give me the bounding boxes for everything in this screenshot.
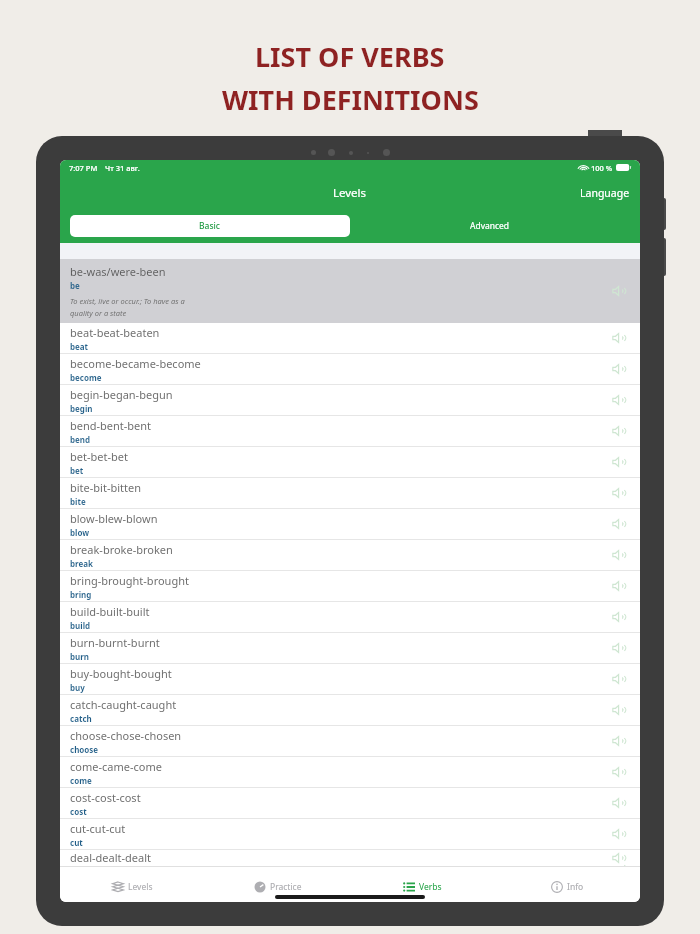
staticText: be-was/were-been [70, 264, 166, 279]
staticText: choose-chose-chosen [70, 728, 182, 743]
staticText: Practice [270, 881, 302, 893]
staticText: Чт 31 авг. [105, 163, 140, 173]
button[interactable]: Play pronunciation [612, 673, 626, 685]
staticText: Verbs [419, 881, 442, 893]
button[interactable]: deal-dealt-dealt [60, 850, 640, 866]
staticText: Advanced [470, 220, 510, 232]
button[interactable]: Play pronunciation [612, 611, 626, 623]
staticText: come [70, 775, 92, 786]
button[interactable]: cost-cost-cost [60, 788, 640, 819]
button[interactable]: Play pronunciation [612, 580, 626, 592]
button[interactable]: be-was/were-been [60, 259, 640, 323]
staticText: burn [70, 651, 90, 662]
staticText: bring [70, 589, 92, 600]
staticText: bet-bet-bet [70, 449, 128, 464]
staticText: choose [70, 744, 99, 755]
button[interactable]: build-built-built [60, 602, 640, 633]
staticText: break-broke-broken [70, 542, 173, 557]
button[interactable]: bend-bent-bent [60, 416, 640, 447]
button[interactable]: Play pronunciation [612, 642, 626, 654]
button[interactable]: Play pronunciation [612, 363, 626, 375]
staticText: cost-cost-cost [70, 790, 141, 805]
button[interactable]: begin-began-begun [60, 385, 640, 416]
staticText: become [70, 372, 102, 383]
button[interactable]: Play pronunciation [612, 332, 626, 344]
staticText: build [70, 620, 91, 631]
staticText: catch-caught-caught [70, 697, 177, 712]
staticText: Levels [333, 185, 367, 201]
button[interactable]: Advanced [350, 215, 630, 237]
staticText: quality or a state [70, 308, 127, 318]
button[interactable]: burn-burnt-burnt [60, 633, 640, 664]
staticText: become-became-become [70, 356, 201, 371]
staticText: catch [70, 713, 92, 724]
staticText: bend-bent-bent [70, 418, 152, 433]
staticText: be [70, 280, 80, 291]
staticText: Basic [199, 220, 221, 232]
staticText: beat-beat-beaten [70, 325, 160, 340]
button[interactable]: Verbs [350, 871, 495, 902]
staticText: bet [70, 465, 84, 476]
button[interactable]: cut-cut-cut [60, 819, 640, 850]
staticText: beat [70, 341, 89, 352]
button[interactable]: beat-beat-beaten [60, 323, 640, 354]
button[interactable]: Play pronunciation [612, 828, 626, 840]
button[interactable]: buy-bought-bought [60, 664, 640, 695]
staticText: bite [70, 496, 86, 507]
button[interactable]: catch-caught-caught [60, 695, 640, 726]
button[interactable]: Play pronunciation [612, 797, 626, 809]
staticText: blow [70, 527, 90, 538]
staticText: break [70, 558, 93, 569]
staticText: burn-burnt-burnt [70, 635, 160, 650]
button[interactable]: Play pronunciation [612, 735, 626, 747]
button[interactable]: Play pronunciation [612, 549, 626, 561]
button[interactable]: bring-brought-brought [60, 571, 640, 602]
button[interactable]: bite-bit-bitten [60, 478, 640, 509]
button[interactable]: Practice [205, 871, 350, 902]
button[interactable]: Play pronunciation [612, 518, 626, 530]
button[interactable]: Play pronunciation [612, 425, 626, 437]
staticText: bite-bit-bitten [70, 480, 141, 495]
staticText: bring-brought-brought [70, 573, 189, 588]
staticText: begin-began-begun [70, 387, 173, 402]
button[interactable]: Levels [60, 871, 205, 902]
button[interactable]: bet-bet-bet [60, 447, 640, 478]
staticText: deal-dealt-dealt [70, 850, 151, 865]
staticText: come-came-come [70, 759, 162, 774]
staticText: To exist, live or occur.; To have as a [70, 296, 185, 306]
staticText: buy [70, 682, 85, 693]
staticText: bend [70, 434, 91, 445]
staticText: 7:07 PM [69, 163, 98, 173]
button[interactable]: Play pronunciation [612, 285, 626, 297]
staticText: build-built-built [70, 604, 150, 619]
button[interactable]: Language [570, 180, 640, 206]
staticText: Language [580, 186, 630, 200]
button[interactable]: choose-chose-chosen [60, 726, 640, 757]
button[interactable]: Play pronunciation [612, 766, 626, 778]
staticText: WITH DEFINITIONS [222, 81, 479, 118]
staticText: blow-blew-blown [70, 511, 158, 526]
staticText: Info [567, 881, 584, 893]
staticText: buy-bought-bought [70, 666, 172, 681]
staticText: cost [70, 806, 87, 817]
staticText: cut-cut-cut [70, 821, 126, 836]
button[interactable]: blow-blew-blown [60, 509, 640, 540]
button[interactable]: break-broke-broken [60, 540, 640, 571]
button[interactable]: Play pronunciation [612, 456, 626, 468]
staticText: begin [70, 403, 93, 414]
staticText: Levels [128, 881, 153, 893]
button[interactable]: Play pronunciation [612, 487, 626, 499]
staticText: 100 % [591, 163, 613, 173]
button[interactable]: Play pronunciation [612, 394, 626, 406]
staticText: cut [70, 837, 83, 848]
button[interactable]: Play pronunciation [612, 704, 626, 716]
button[interactable]: Info [495, 871, 640, 902]
staticText: LIST OF VERBS [255, 38, 445, 75]
button[interactable]: become-became-become [60, 354, 640, 385]
button[interactable]: Basic [70, 215, 350, 237]
button[interactable]: Play pronunciation [612, 852, 626, 864]
button[interactable]: come-came-come [60, 757, 640, 788]
